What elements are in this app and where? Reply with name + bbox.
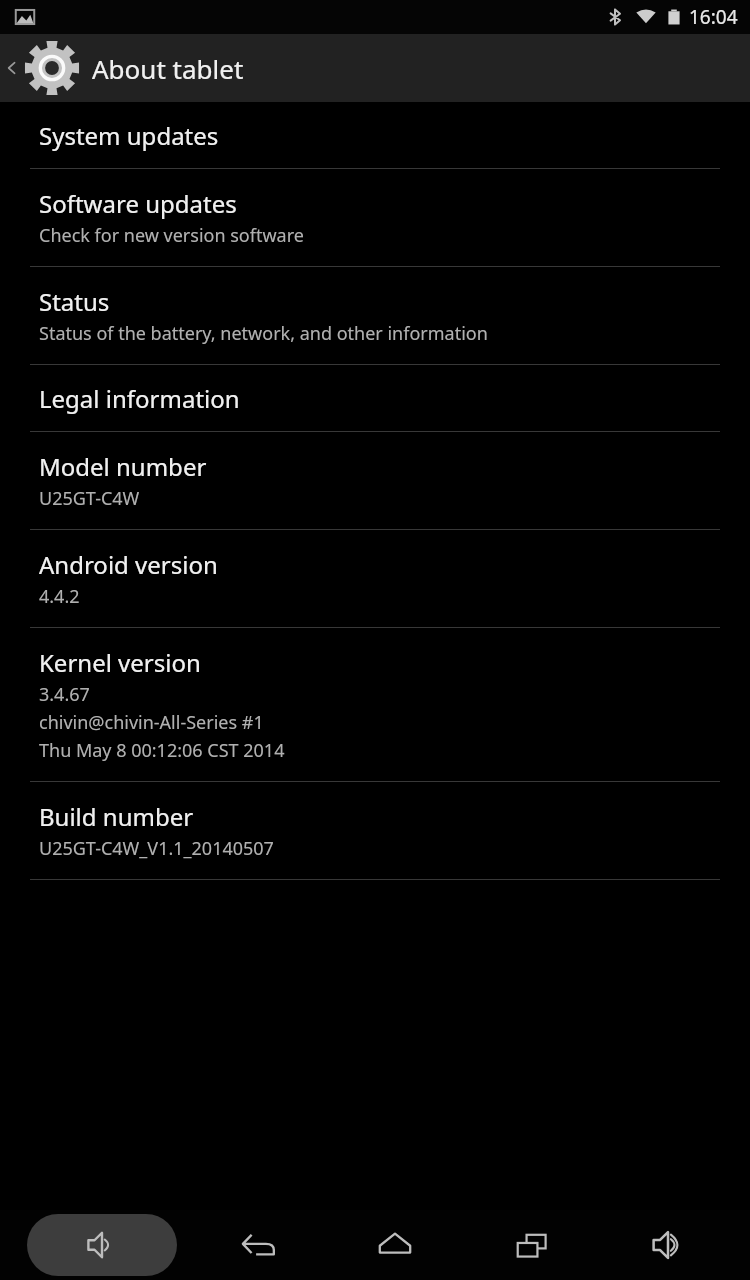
staticText: Kernel version — [39, 646, 201, 679]
staticText: Check for new version software — [39, 223, 304, 248]
staticText: 3.4.67 — [39, 682, 90, 707]
staticText: Android version — [39, 548, 218, 581]
button[interactable]: Home — [340, 1214, 450, 1276]
staticText: About tablet — [92, 51, 244, 86]
staticText: System updates — [39, 119, 219, 152]
button[interactable]: Android version — [0, 530, 750, 627]
staticText: Thu May 8 00:12:06 CST 2014 — [39, 738, 285, 763]
button[interactable]: Legal information — [0, 365, 750, 431]
button[interactable]: Back — [203, 1214, 313, 1276]
staticText: Legal information — [39, 382, 240, 415]
button[interactable]: Kernel version — [0, 628, 750, 781]
staticText: Build number — [39, 800, 194, 833]
staticText: Model number — [39, 450, 207, 483]
staticText: U25GT-C4W — [39, 486, 140, 511]
button[interactable]: Back — [0, 34, 750, 102]
button[interactable]: Model number — [0, 432, 750, 529]
staticText: chivin@chivin-All-Series #1 — [39, 710, 264, 735]
button[interactable]: Recent apps — [477, 1214, 587, 1276]
button[interactable]: System updates — [0, 102, 750, 168]
staticText: 16:04 — [689, 4, 738, 30]
staticText: 4.4.2 — [39, 584, 80, 609]
staticText: Software updates — [39, 187, 237, 220]
staticText: U25GT-C4W_V1.1_20140507 — [39, 836, 274, 861]
other: Back — [6, 62, 18, 74]
button[interactable]: Software updates — [0, 169, 750, 266]
staticText: Status of the battery, network, and othe… — [39, 321, 488, 346]
button[interactable]: Build number — [0, 782, 750, 879]
button[interactable]: Status — [0, 267, 750, 364]
button[interactable]: Volume up — [613, 1214, 723, 1276]
staticText: Status — [39, 285, 110, 318]
button[interactable]: Volume down — [27, 1214, 177, 1276]
